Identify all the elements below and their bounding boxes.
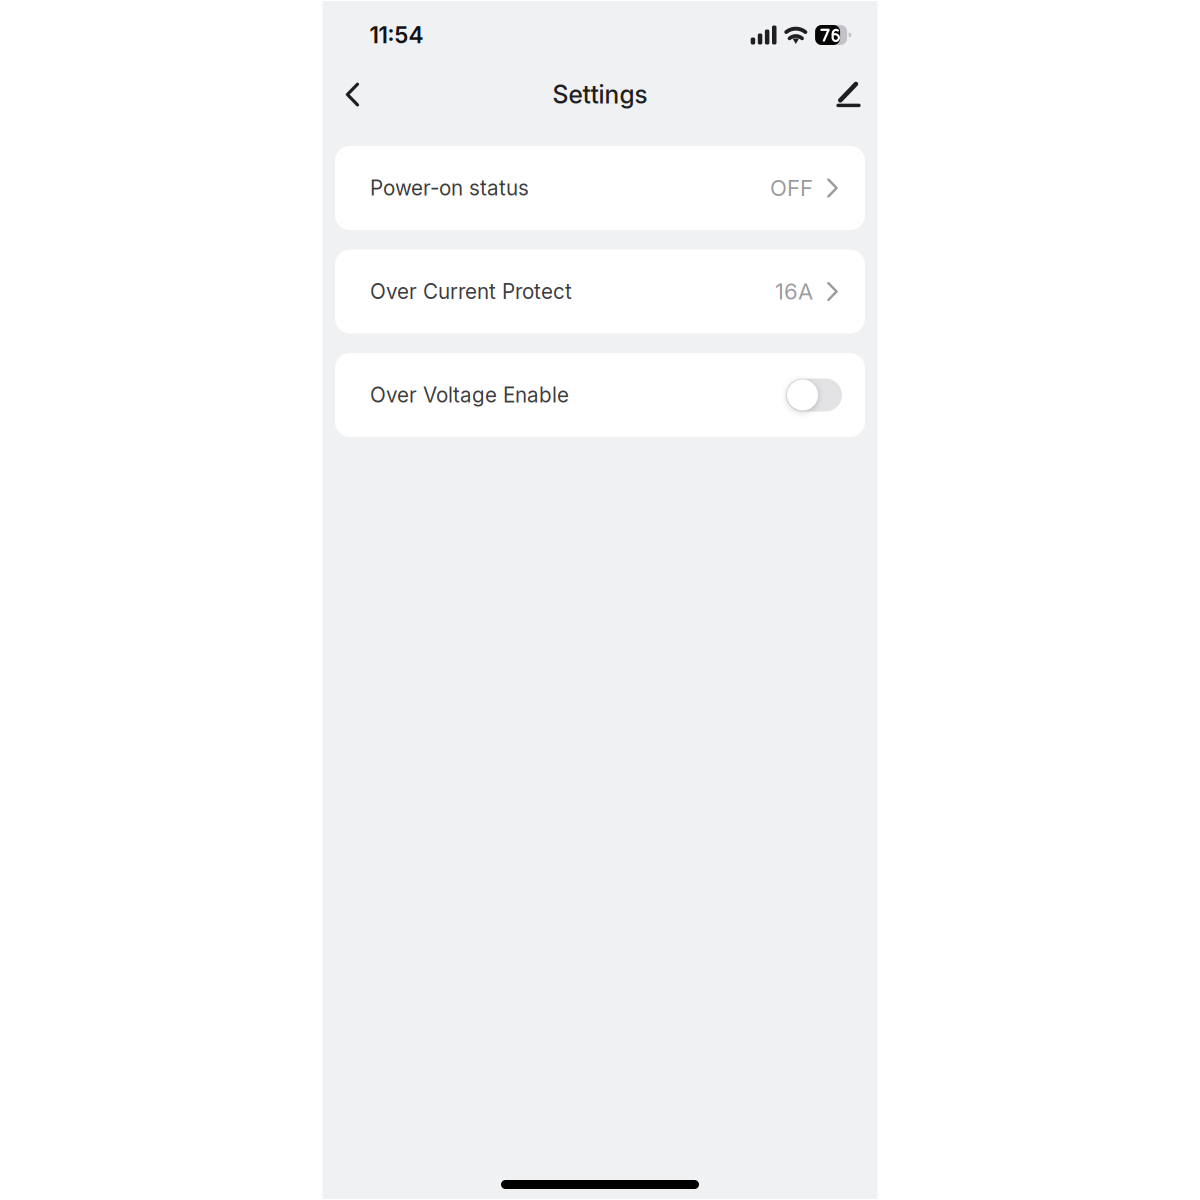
staticText: Power-on status xyxy=(370,175,529,200)
button[interactable]: Over Current Protect xyxy=(335,249,865,333)
staticText: 16A xyxy=(775,278,813,305)
staticText: OFF xyxy=(770,175,813,201)
staticText: 11:54 xyxy=(369,21,423,49)
button[interactable]: Power-on status xyxy=(335,146,865,230)
button[interactable]: Edit xyxy=(820,70,860,118)
staticText: Over Current Protect xyxy=(370,279,572,304)
staticText: Settings xyxy=(552,79,647,109)
button[interactable]: Over Voltage Enable xyxy=(335,353,865,437)
staticText: Over Voltage Enable xyxy=(370,382,569,407)
button[interactable]: Back xyxy=(345,70,389,118)
